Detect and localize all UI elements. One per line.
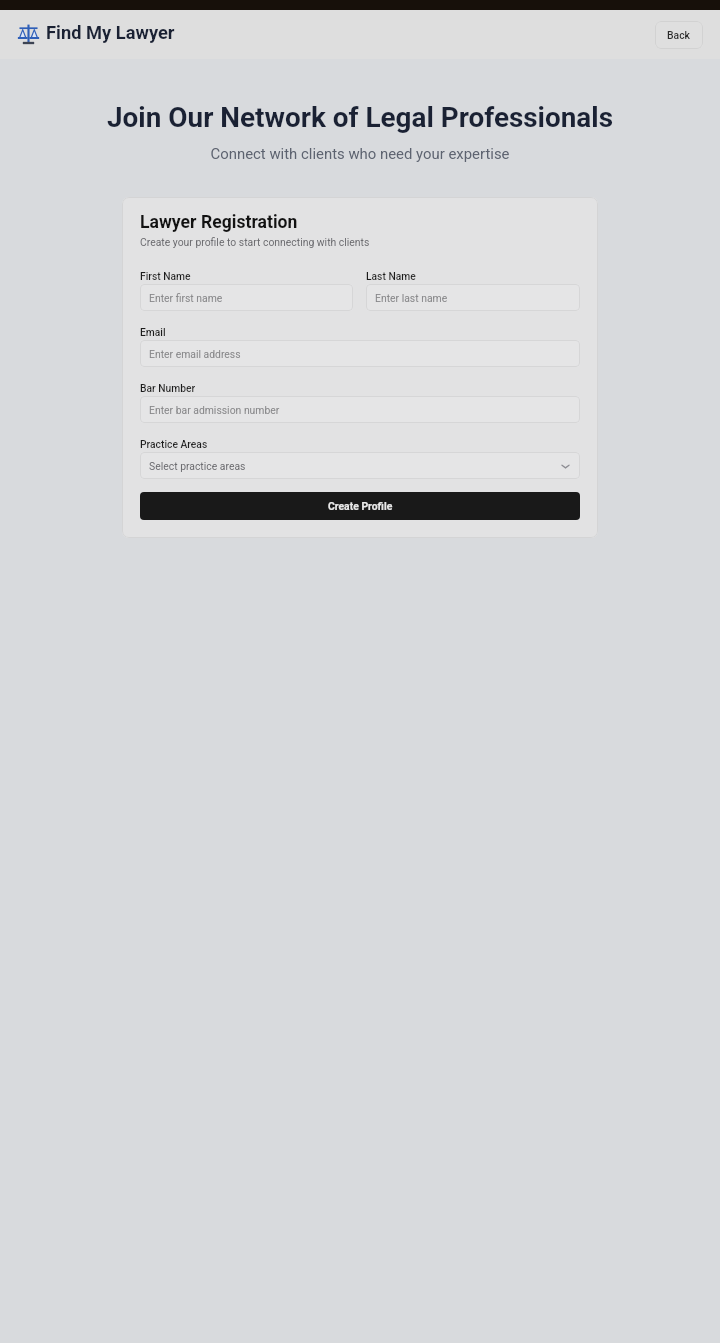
staticText: Find My Lawyer [46,22,175,43]
button[interactable]: Enter first name [140,284,353,311]
staticText: Enter first name [149,292,223,304]
button[interactable]: Enter bar admission number [140,396,580,423]
button[interactable]: Create Profile [140,492,580,520]
staticText: First Name [140,270,191,282]
staticText: Enter last name [375,292,448,304]
staticText: Back [667,29,691,41]
staticText: Last Name [366,270,416,282]
staticText: Practice Areas [140,438,208,450]
button[interactable]: Enter email address [140,340,580,367]
button[interactable]: Back [655,21,703,49]
staticText: Create Profile [328,500,393,512]
button[interactable]: Select practice areas [140,452,580,479]
button[interactable]: Enter last name [366,284,580,311]
staticText: Email [140,326,166,338]
staticText: Select practice areas [149,460,246,472]
other: Find My Lawyer [18,24,39,44]
button[interactable]: Find My Lawyer [18,23,175,44]
staticText: Lawyer Registration [140,212,298,233]
staticText: Connect with clients who need your exper… [0,145,720,162]
staticText: Create your profile to start connecting … [140,236,370,248]
staticText: Enter email address [149,348,241,360]
staticText: Join Our Network of Legal Professionals [0,101,720,134]
staticText: Bar Number [140,382,196,394]
staticText: Enter bar admission number [149,404,280,416]
